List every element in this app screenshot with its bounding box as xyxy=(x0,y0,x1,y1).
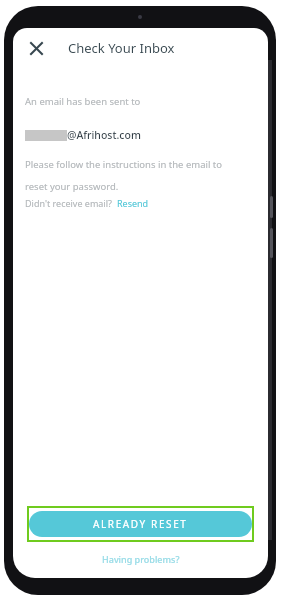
button[interactable]: Having problems? xyxy=(99,550,183,568)
staticText: @Afrihost.com xyxy=(67,128,141,142)
button[interactable]: Close xyxy=(19,31,53,65)
staticText: Didn't receive email? xyxy=(25,197,112,209)
button[interactable]: ALREADY RESET xyxy=(29,511,252,537)
staticText: Please follow the instructions in the em… xyxy=(25,158,223,171)
button[interactable]: Resend xyxy=(112,197,149,209)
staticText: ALREADY RESET xyxy=(93,517,188,531)
staticText: Resend xyxy=(117,197,149,209)
staticText: Having problems? xyxy=(102,553,180,565)
staticText: reset your password. xyxy=(25,180,119,193)
staticText: An email has been sent to xyxy=(25,95,141,108)
staticText: Check Your Inbox xyxy=(68,39,175,57)
